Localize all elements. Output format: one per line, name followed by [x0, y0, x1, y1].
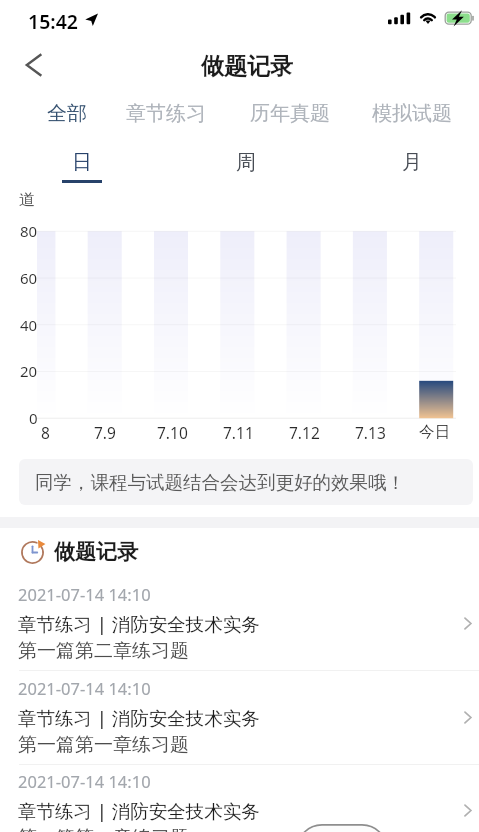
button[interactable]: 2021-07-14 14:10 — [0, 671, 479, 763]
button[interactable]: 2021-07-14 14:10 — [0, 764, 479, 832]
button[interactable]: 全部 — [0, 0, 56, 30]
button[interactable]: Assistant — [296, 824, 388, 832]
staticText: 历年真题 — [250, 101, 330, 126]
staticText: 月 — [402, 150, 422, 175]
staticText: 7.9 — [94, 422, 116, 443]
staticText: 第一篇第一章练习题 — [18, 826, 189, 832]
staticText: 章节练习 — [126, 101, 206, 126]
staticText: 章节练习 | 消防安全技术实务 — [18, 705, 260, 729]
staticText: 模拟试题 — [372, 101, 452, 126]
staticText: 40 — [20, 315, 38, 335]
staticText: 7.11 — [223, 422, 254, 443]
staticText: 2021-07-14 14:10 — [18, 770, 151, 792]
staticText: 2021-07-14 14:10 — [18, 677, 151, 699]
staticText: 20 — [20, 361, 38, 381]
staticText: 章节练习 | 消防安全技术实务 — [18, 611, 260, 635]
staticText: 今日 — [419, 422, 450, 442]
staticText: 日 — [72, 150, 92, 175]
staticText: 60 — [20, 268, 38, 288]
button[interactable]: 做题记录 — [16, 536, 156, 568]
staticText: 道 — [19, 190, 35, 210]
button[interactable]: 模拟试题 — [0, 0, 88, 30]
staticText: 15:42 — [28, 8, 78, 30]
staticText: 做题记录 — [201, 52, 293, 81]
staticText: 7.10 — [157, 422, 188, 443]
button[interactable]: 历年真题 — [0, 0, 88, 30]
staticText: 第一篇第一章练习题 — [18, 733, 189, 757]
staticText: 0 — [29, 408, 38, 428]
button[interactable]: 月 — [372, 144, 452, 188]
staticText: 7.12 — [289, 422, 320, 443]
button[interactable]: Back — [16, 46, 54, 84]
button[interactable]: 日 — [42, 144, 122, 188]
staticText: 2021-07-14 14:10 — [18, 583, 151, 605]
staticText: 章节练习 | 消防安全技术实务 — [18, 798, 260, 822]
button[interactable]: 2021-07-14 14:10 — [0, 577, 479, 669]
staticText: 80 — [20, 221, 38, 241]
staticText: 第一篇第二章练习题 — [18, 639, 189, 663]
staticText: 同学，课程与试题结合会达到更好的效果哦！ — [35, 471, 405, 494]
staticText: 周 — [236, 150, 256, 175]
button[interactable]: 同学，课程与试题结合会达到更好的效果哦！ — [19, 459, 473, 505]
button[interactable]: 周 — [206, 144, 286, 188]
staticText: 全部 — [47, 101, 87, 126]
button[interactable]: 章节练习 — [0, 0, 88, 30]
staticText: 做题记录 — [54, 539, 138, 565]
staticText: 8 — [41, 422, 50, 443]
staticText: 7.13 — [355, 422, 386, 443]
